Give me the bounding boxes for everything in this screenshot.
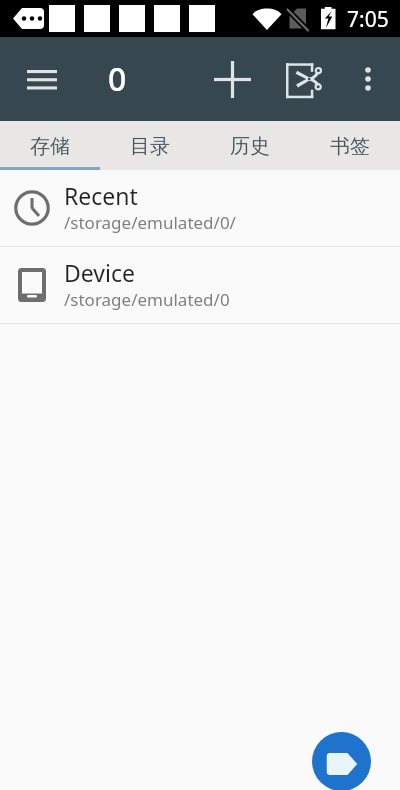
button[interactable]: 目录 [100, 121, 200, 170]
button[interactable]: More options [346, 57, 390, 101]
staticText: 0 [108, 57, 127, 101]
button[interactable]: 存储 [0, 121, 100, 170]
staticText: 7:05 [347, 5, 389, 34]
button[interactable]: Select label [312, 732, 371, 790]
button[interactable]: Recent [0, 170, 400, 246]
button[interactable]: Navigation menu [18, 54, 66, 102]
staticText: /storage/emulated/0/ [64, 211, 236, 234]
staticText: 历史 [230, 134, 270, 159]
button[interactable]: 书签 [300, 121, 400, 170]
staticText: 书签 [330, 134, 370, 159]
button[interactable]: Extract [283, 37, 325, 121]
staticText: Recent [64, 180, 138, 211]
staticText: 目录 [130, 134, 170, 159]
button[interactable]: 历史 [200, 121, 300, 170]
staticText: /storage/emulated/0 [64, 288, 230, 311]
staticText: Device [64, 257, 135, 288]
button[interactable]: Add [208, 55, 256, 103]
staticText: 存储 [30, 134, 70, 159]
button[interactable]: Device [0, 247, 400, 323]
